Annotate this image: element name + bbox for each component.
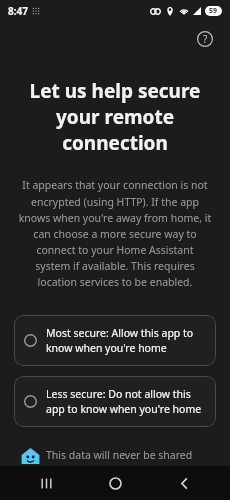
staticText: Less secure: Do not allow this app to kn… bbox=[46, 387, 206, 416]
staticText: Most secure: Allow this app to know when… bbox=[46, 326, 206, 355]
staticText: Let us help secure your remote connectio… bbox=[24, 78, 206, 156]
staticText: 8:47 bbox=[8, 4, 28, 18]
staticText: 59 bbox=[209, 6, 218, 16]
button[interactable]: Back bbox=[161, 466, 207, 500]
staticText: It appears that your connection is not e… bbox=[18, 178, 212, 289]
button[interactable]: Recents bbox=[23, 466, 69, 500]
button[interactable]: Home bbox=[92, 466, 138, 500]
staticText: ? bbox=[203, 32, 208, 46]
button[interactable]: Most secure: Allow this app to know when… bbox=[14, 315, 216, 366]
staticText: This data will never be shared with the … bbox=[46, 448, 216, 466]
button[interactable]: Help bbox=[192, 26, 218, 52]
button[interactable]: Less secure: Do not allow this app to kn… bbox=[14, 376, 216, 427]
